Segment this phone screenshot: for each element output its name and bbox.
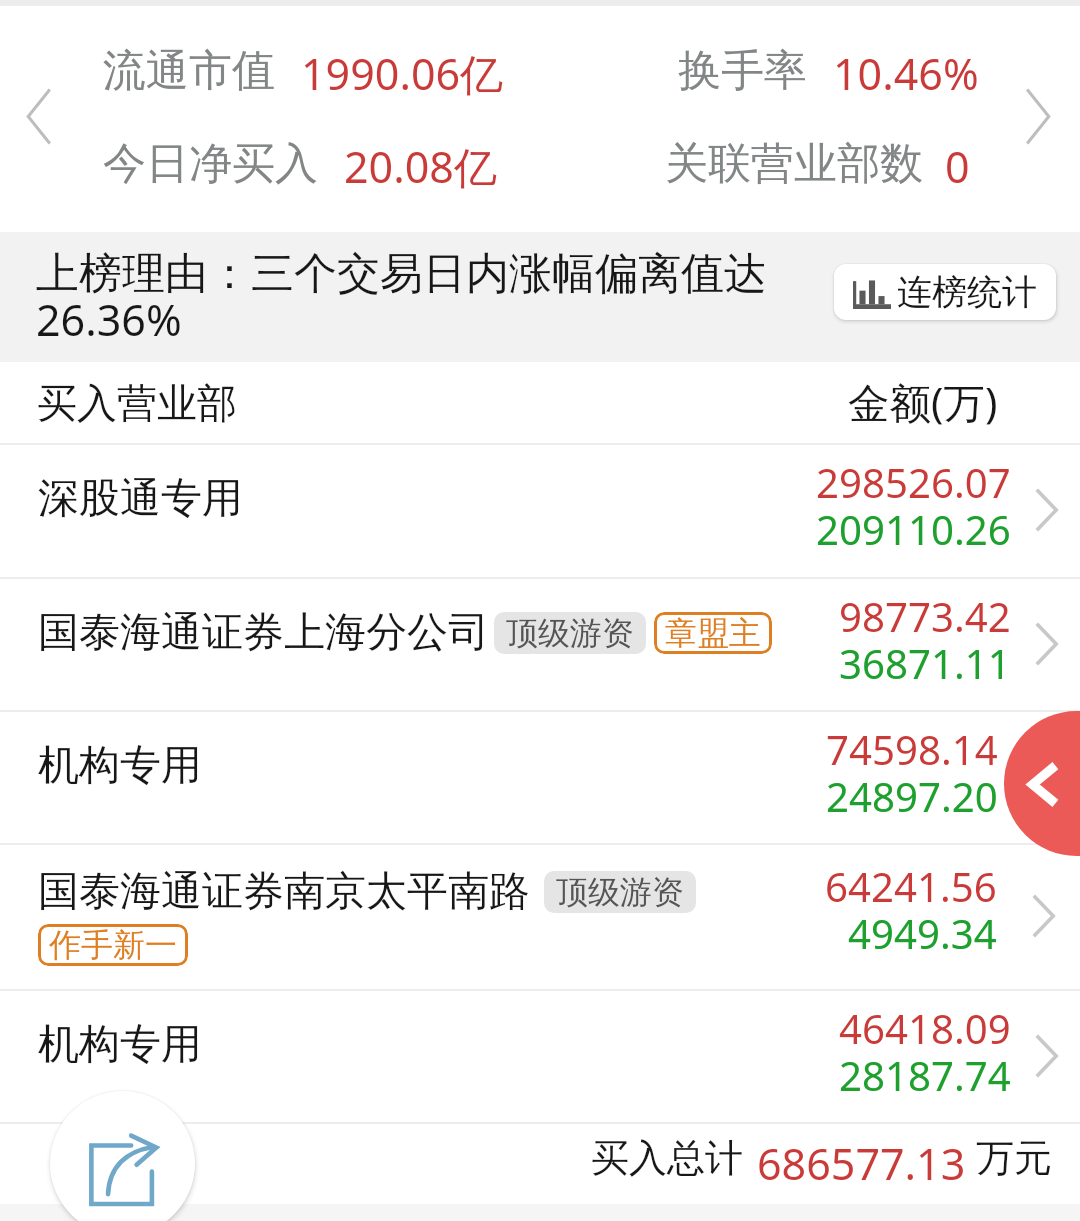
- staticText: 深股通专用: [38, 473, 243, 525]
- staticText: 买入营业部: [37, 378, 237, 428]
- staticText: 顶级游资: [506, 613, 634, 653]
- staticText: 686577.13: [757, 1134, 966, 1193]
- staticText: 流通市值: [103, 44, 275, 98]
- staticText: 10.46%: [833, 44, 979, 103]
- staticText: 金额(万): [848, 374, 998, 431]
- staticText: 20.08亿: [344, 137, 497, 196]
- staticText: 关联营业部数: [665, 137, 923, 191]
- button[interactable]: Share: [50, 1091, 195, 1221]
- staticText: 24897.20: [826, 769, 998, 824]
- staticText: 作手新一: [49, 925, 177, 965]
- staticText: 机构专用: [38, 1019, 202, 1071]
- staticText: 98773.42: [839, 589, 1011, 644]
- staticText: 1990.06亿: [301, 44, 504, 103]
- button[interactable]: 连榜统计: [834, 264, 1056, 320]
- staticText: 74598.14: [826, 722, 998, 777]
- button[interactable]: 深股通专用: [0, 443, 1080, 577]
- staticText: 机构专用: [38, 740, 202, 792]
- staticText: 64241.56: [825, 859, 997, 914]
- button[interactable]: 机构专用: [0, 989, 1080, 1122]
- staticText: 46418.09: [839, 1001, 1011, 1056]
- button[interactable]: Previous stock: [0, 51, 78, 181]
- staticText: 国泰海通证券南京太平南路: [38, 866, 530, 918]
- staticText: 国泰海通证券上海分公司: [38, 607, 489, 659]
- button[interactable]: Next stock: [995, 51, 1080, 181]
- staticText: 209110.26: [816, 502, 1011, 557]
- staticText: 298526.07: [816, 455, 1011, 510]
- staticText: 章盟主: [665, 613, 761, 653]
- button[interactable]: 机构专用: [0, 710, 1080, 843]
- staticText: 今日净买入: [103, 137, 318, 191]
- button[interactable]: 国泰海通证券南京太平南路: [0, 843, 1080, 989]
- staticText: 换手率: [678, 44, 807, 98]
- staticText: 0: [945, 137, 970, 196]
- staticText: 连榜统计: [897, 270, 1037, 314]
- staticText: 4949.34: [848, 906, 997, 961]
- button[interactable]: Collapse panel: [1004, 711, 1080, 856]
- staticText: 万元: [976, 1134, 1052, 1182]
- staticText: 买入总计: [591, 1134, 743, 1182]
- staticText: 36871.11: [839, 636, 1011, 691]
- button[interactable]: 国泰海通证券上海分公司: [0, 577, 1080, 710]
- staticText: 28187.74: [839, 1048, 1011, 1103]
- staticText: 顶级游资: [556, 872, 684, 912]
- staticText: 上榜理由：三个交易日内涨幅偏离值达26.36%: [36, 247, 796, 349]
